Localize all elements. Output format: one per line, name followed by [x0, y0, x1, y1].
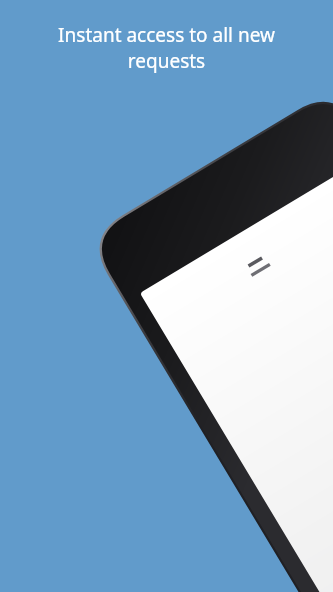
- staticText: Instant access to all new requests: [26, 22, 307, 74]
- button[interactable]: Instant access to all new requests: [26, 22, 307, 74]
